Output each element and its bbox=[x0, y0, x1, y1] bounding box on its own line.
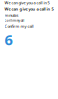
staticText: minutes bbox=[4, 13, 18, 18]
staticText: Confirm my call bbox=[4, 19, 24, 22]
staticText: We can give you a call in 5 bbox=[4, 6, 53, 12]
staticText: 6 bbox=[4, 30, 12, 49]
staticText: Confirm my call bbox=[4, 23, 33, 29]
staticText: We can give you a call in 5 bbox=[4, 0, 49, 5]
